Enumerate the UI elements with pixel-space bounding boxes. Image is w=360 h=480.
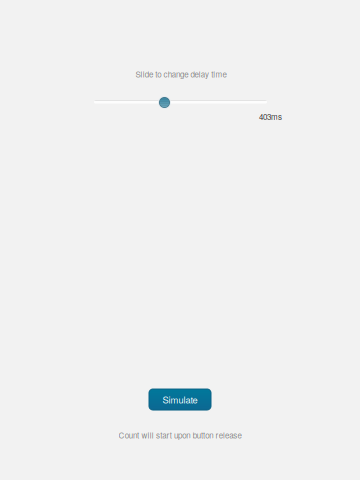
button[interactable]: Simulate xyxy=(149,389,211,410)
staticText: Simulate xyxy=(162,393,197,406)
staticText: Slide to change delay time xyxy=(135,68,226,80)
staticText: 403ms xyxy=(259,111,282,122)
button[interactable]: Delay time slider, 403 milliseconds xyxy=(94,100,267,104)
staticText: Count will start upon button release xyxy=(119,429,241,441)
